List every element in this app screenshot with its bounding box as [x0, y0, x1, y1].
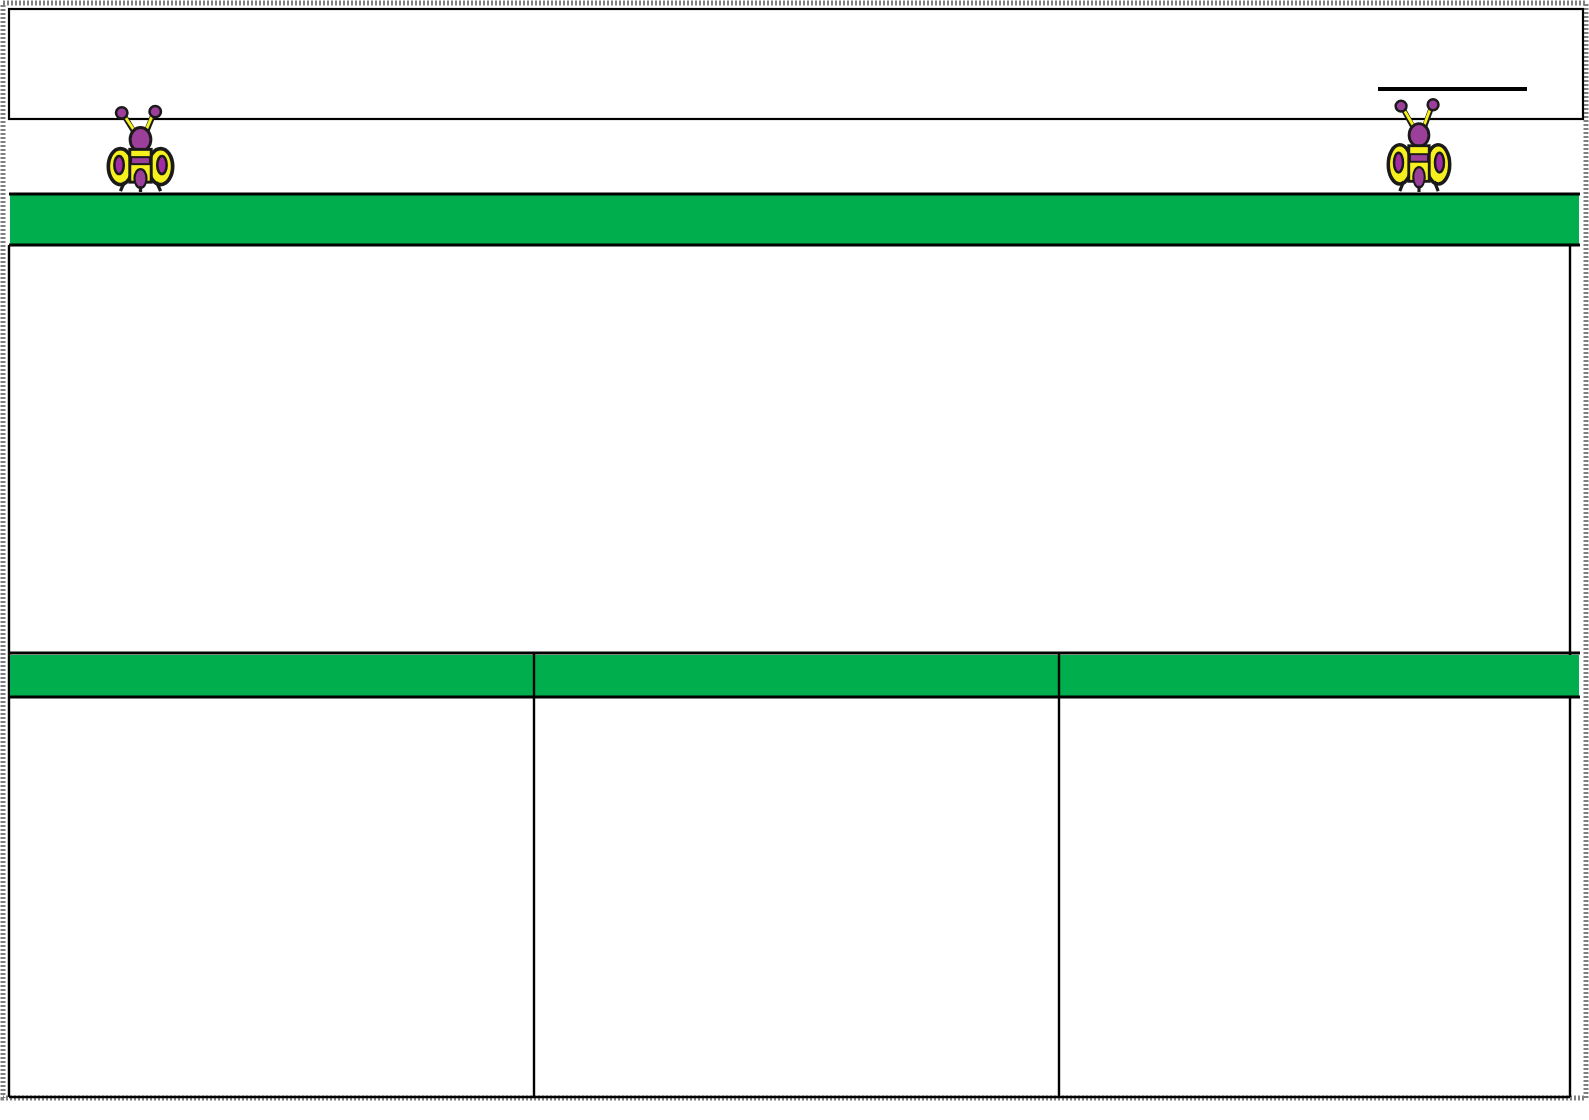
other: Document page — [0, 0, 1589, 1120]
button[interactable]: Document page — [0, 0, 1589, 1120]
